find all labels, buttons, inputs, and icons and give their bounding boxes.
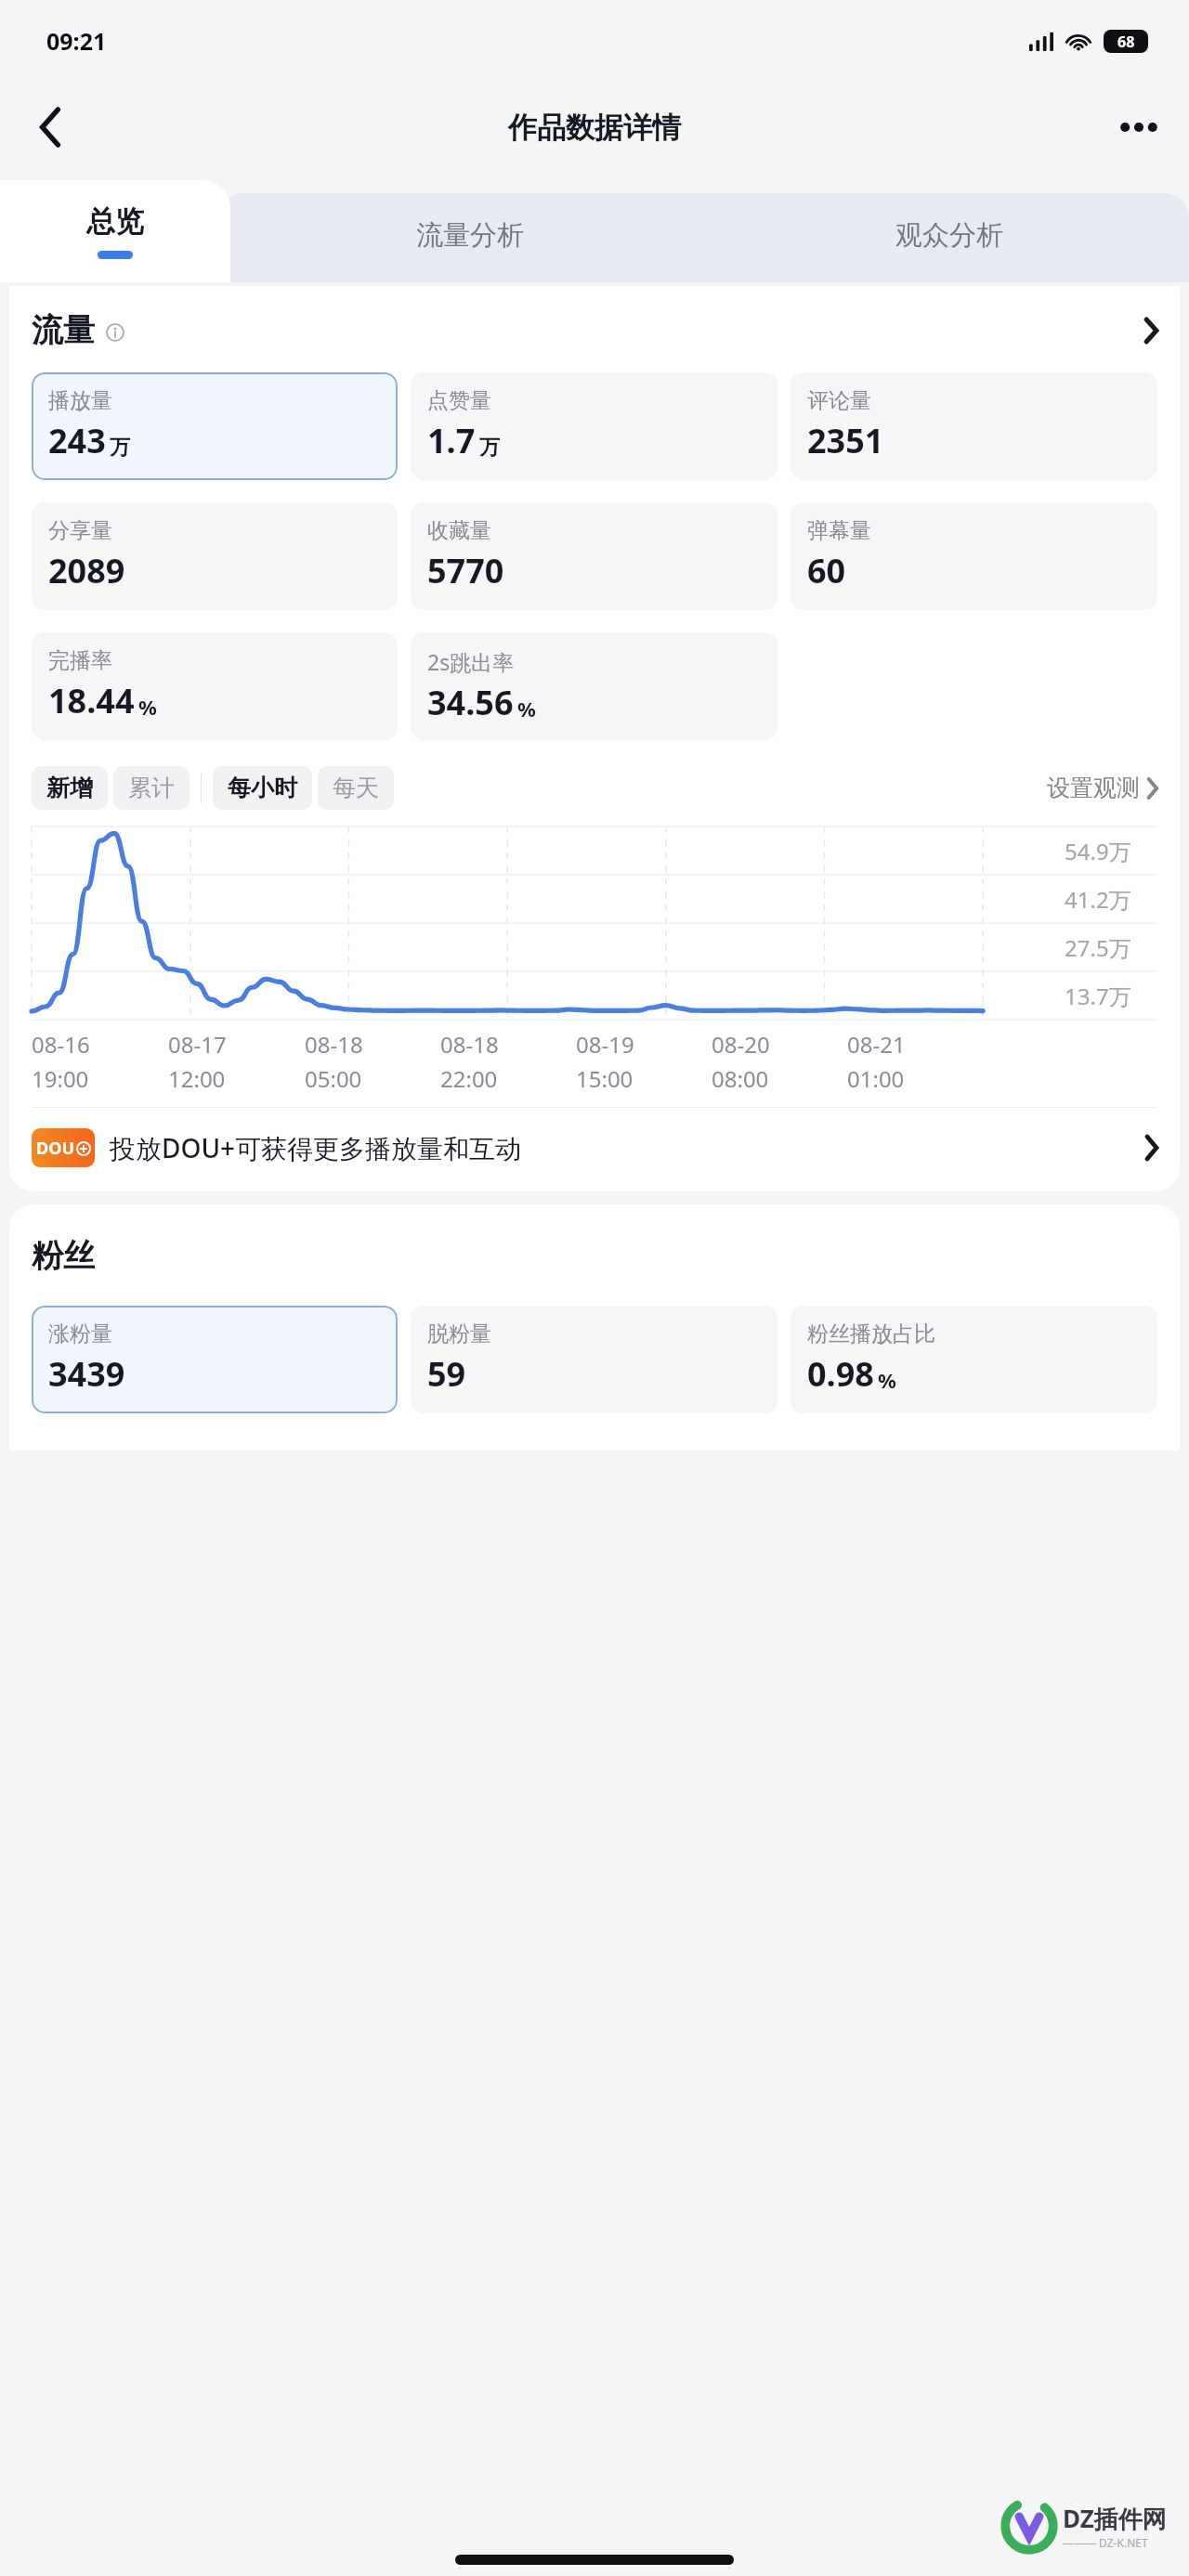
button[interactable]: 2s跳出率: [411, 632, 777, 740]
button[interactable]: 评论量: [790, 372, 1157, 480]
button[interactable]: 累计: [113, 766, 189, 810]
staticText: 2351: [807, 418, 884, 463]
staticText: 08-21: [847, 1029, 906, 1060]
staticText: 粉丝: [32, 1236, 95, 1276]
staticText: 08:00: [712, 1063, 769, 1094]
staticText: 流量: [32, 310, 95, 350]
staticText: 粉丝播放占比: [807, 1321, 935, 1347]
button[interactable]: 总览: [0, 180, 230, 282]
staticText: 01:00: [847, 1063, 905, 1094]
button[interactable]: 观众分析: [710, 173, 1189, 282]
button[interactable]: 每天: [318, 766, 394, 810]
staticText: 播放量: [48, 387, 112, 414]
staticText: 15:00: [576, 1063, 634, 1094]
staticText: 涨粉量: [48, 1321, 112, 1347]
staticText: 08-19: [576, 1029, 634, 1060]
staticText: 60: [807, 548, 846, 593]
button[interactable]: More options: [1113, 101, 1165, 153]
staticText: 每小时: [228, 774, 297, 802]
staticText: 243: [48, 418, 106, 463]
staticText: 3439: [48, 1351, 125, 1397]
staticText: 34.56: [427, 680, 514, 725]
staticText: 流量分析: [416, 218, 524, 253]
button[interactable]: 流量分析: [230, 173, 710, 282]
staticText: 05:00: [305, 1063, 362, 1094]
staticText: 22:00: [440, 1063, 498, 1094]
staticText: 弹幕量: [807, 517, 871, 544]
button[interactable]: 弹幕量: [790, 502, 1157, 610]
staticText: 2089: [48, 548, 125, 593]
staticText: 设置观测: [1047, 774, 1140, 802]
button[interactable]: 新增: [32, 766, 108, 810]
staticText: 08-18: [440, 1029, 499, 1060]
staticText: 18.44: [48, 678, 135, 723]
staticText: %: [878, 1366, 896, 1394]
staticText: 每天: [333, 774, 379, 802]
staticText: %: [138, 693, 157, 721]
staticText: %: [517, 695, 536, 722]
button[interactable]: 每小时: [213, 766, 312, 810]
staticText: ——— DZ-K.NET: [1063, 2535, 1148, 2550]
button[interactable]: 分享量: [32, 502, 398, 610]
staticText: 分享量: [48, 517, 112, 544]
staticText: 收藏量: [427, 517, 491, 544]
staticText: 68: [1117, 32, 1135, 52]
button[interactable]: DOU: [32, 1128, 1157, 1167]
staticText: 08-16: [32, 1029, 90, 1060]
staticText: 1.7: [427, 418, 476, 463]
staticText: 08-17: [168, 1029, 227, 1060]
staticText: 08-18: [305, 1029, 363, 1060]
staticText: 13.7万: [1065, 981, 1131, 1011]
staticText: DZ插件网: [1063, 2502, 1167, 2535]
staticText: 作品数据详情: [508, 110, 681, 146]
staticText: 59: [427, 1351, 466, 1397]
button[interactable]: Back: [24, 101, 76, 153]
button[interactable]: 收藏量: [411, 502, 777, 610]
staticText: 5770: [427, 548, 504, 593]
staticText: 41.2万: [1065, 884, 1131, 915]
button[interactable]: 流量: [32, 310, 1157, 350]
staticText: 27.5万: [1065, 932, 1131, 963]
button[interactable]: 脱粉量: [411, 1306, 777, 1413]
staticText: 19:00: [32, 1063, 89, 1094]
staticText: 54.9万: [1065, 836, 1131, 866]
staticText: 万: [110, 435, 130, 461]
button[interactable]: 播放量: [32, 372, 398, 480]
staticText: 脱粉量: [427, 1321, 491, 1347]
button[interactable]: 粉丝播放占比: [790, 1306, 1157, 1413]
button[interactable]: 设置观测: [1047, 774, 1157, 802]
staticText: 09:21: [46, 25, 107, 57]
staticText: DOU: [36, 1137, 75, 1160]
button[interactable]: 点赞量: [411, 372, 777, 480]
staticText: 投放DOU+可获得更多播放量和互动: [110, 1130, 522, 1165]
staticText: 评论量: [807, 387, 871, 414]
staticText: 完播率: [48, 647, 112, 674]
staticText: 万: [479, 435, 500, 461]
button[interactable]: 完播率: [32, 632, 398, 740]
staticText: 12:00: [168, 1063, 226, 1094]
staticText: 0.98: [807, 1351, 874, 1397]
staticText: 观众分析: [895, 218, 1003, 253]
staticText: 2s跳出率: [427, 647, 515, 676]
staticText: 点赞量: [427, 387, 491, 414]
staticText: 总览: [86, 203, 144, 240]
staticText: 08-20: [712, 1029, 770, 1060]
staticText: 累计: [128, 774, 175, 802]
button[interactable]: 涨粉量: [32, 1306, 398, 1413]
staticText: 新增: [46, 774, 93, 802]
